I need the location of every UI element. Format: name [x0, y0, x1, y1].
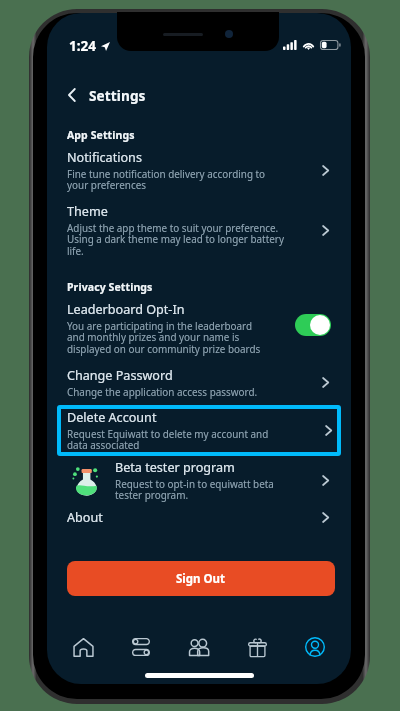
- button[interactable]: About: [47, 509, 351, 526]
- staticText: Sign Out: [176, 571, 226, 587]
- staticText: You are participating in the leaderboard…: [67, 319, 261, 356]
- staticText: Notifications: [67, 149, 142, 166]
- button[interactable]: Change Password: [47, 367, 351, 398]
- staticText: App Settings: [67, 128, 135, 142]
- button[interactable]: Theme: [47, 203, 351, 258]
- button[interactable]: Leaderboard Opt-In: [47, 301, 351, 356]
- button[interactable]: Sign Out: [67, 561, 335, 596]
- button[interactable]: Beta tester program: [47, 459, 351, 502]
- staticText: Request Equiwatt to delete my account an…: [67, 427, 269, 452]
- staticText: Theme: [67, 203, 108, 220]
- button[interactable]: Delete Account: [57, 405, 341, 456]
- button[interactable]: Home: [61, 625, 105, 669]
- staticText: Adjust the app theme to suit your prefer…: [67, 221, 284, 258]
- staticText: Privacy Settings: [67, 280, 153, 294]
- staticText: Beta tester program: [115, 459, 235, 476]
- staticText: Settings: [89, 86, 146, 105]
- staticText: Leaderboard Opt-In: [67, 301, 185, 318]
- button[interactable]: Notifications: [47, 149, 351, 192]
- staticText: Request to opt-in to equiwatt beta teste…: [115, 477, 274, 502]
- staticText: About: [67, 509, 103, 526]
- staticText: Change Password: [67, 367, 173, 384]
- button[interactable]: Community: [177, 625, 221, 669]
- staticText: Fine tune notification delivery accordin…: [67, 167, 266, 192]
- staticText: Delete Account: [67, 409, 157, 426]
- button[interactable]: Profile: [293, 625, 337, 669]
- staticText: Change the application access password.: [67, 385, 258, 398]
- button[interactable]: Settings controls: [119, 625, 163, 669]
- staticText: 1:24: [69, 37, 96, 55]
- button[interactable]: Rewards: [235, 625, 279, 669]
- button[interactable]: Back: [61, 84, 83, 106]
- button[interactable]: Leaderboard Opt-In toggle: [295, 314, 331, 336]
